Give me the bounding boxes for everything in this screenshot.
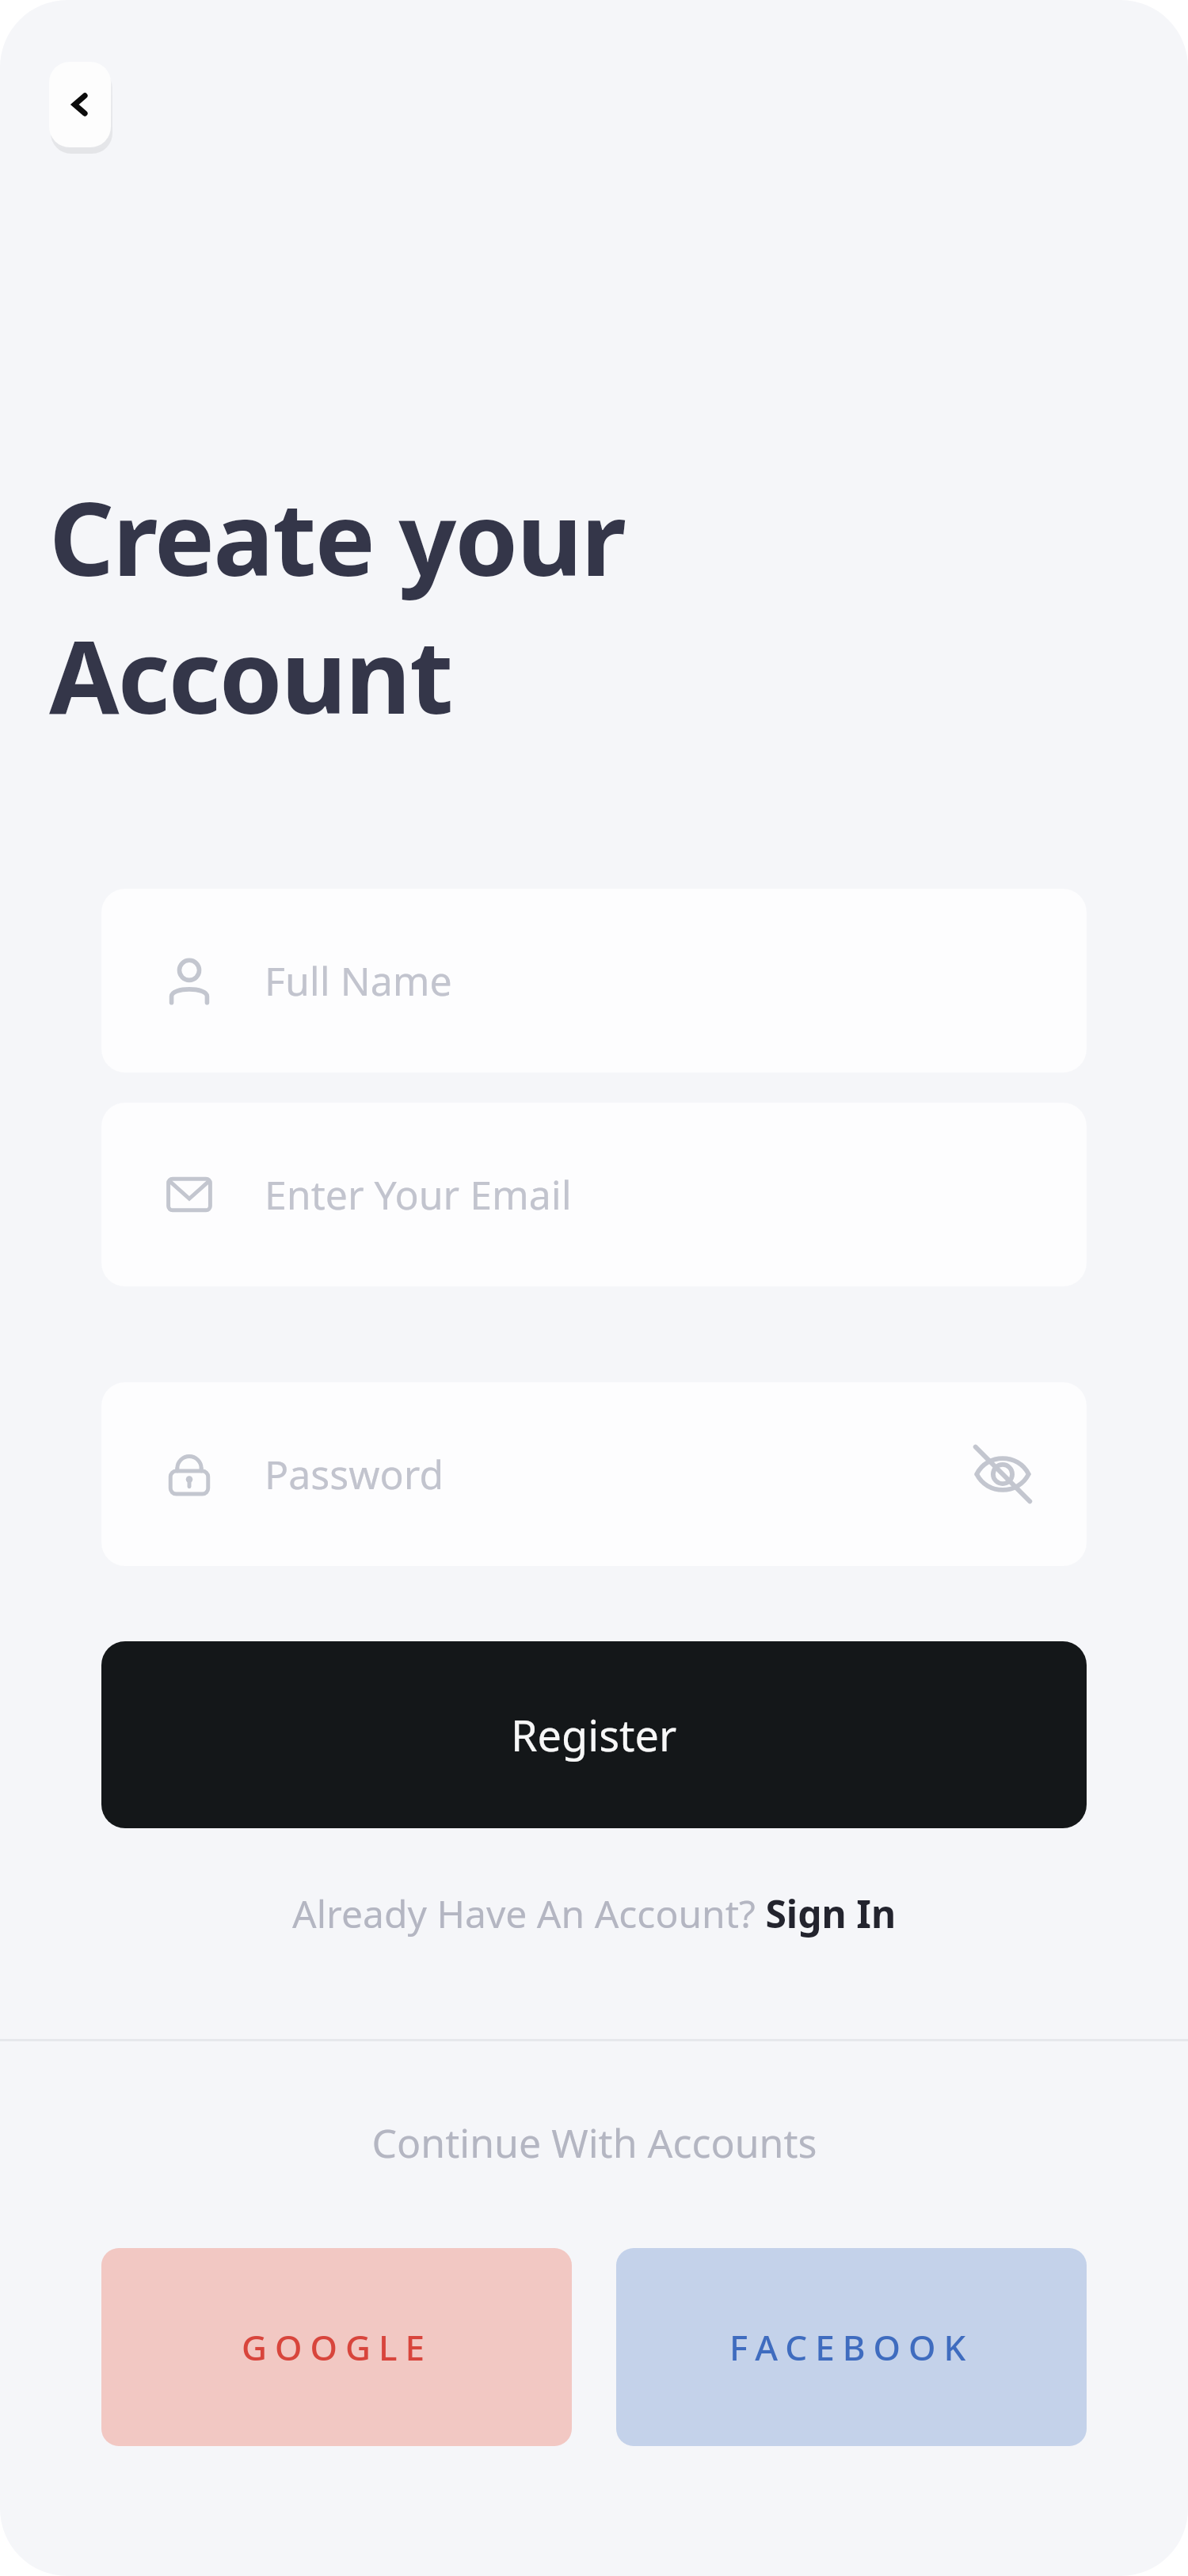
button[interactable]: Register — [101, 1641, 1087, 1828]
button[interactable]: Show password — [965, 1436, 1041, 1512]
staticText: Account — [49, 605, 452, 743]
staticText: Password — [265, 1447, 444, 1501]
button[interactable]: GOOGLE — [101, 2248, 572, 2446]
button[interactable]: Already Have An Account? Sign In — [286, 1883, 903, 1944]
button[interactable]: Enter Your Email — [101, 1103, 1087, 1286]
button[interactable]: Back — [49, 62, 111, 147]
staticText: GOOGLE — [242, 2323, 432, 2371]
staticText: Full Name — [265, 954, 452, 1008]
staticText: Register — [511, 1705, 677, 1764]
button[interactable]: Full Name — [101, 889, 1087, 1073]
staticText: FACEBOOK — [729, 2323, 974, 2371]
staticText: Create your — [49, 467, 625, 605]
staticText: Continue With Accounts — [371, 2116, 817, 2170]
staticText: Enter Your Email — [265, 1168, 572, 1221]
button[interactable]: FACEBOOK — [616, 2248, 1087, 2446]
button[interactable]: Password — [101, 1382, 1087, 1566]
staticText: Already Have An Account? Sign In — [292, 1888, 897, 1939]
